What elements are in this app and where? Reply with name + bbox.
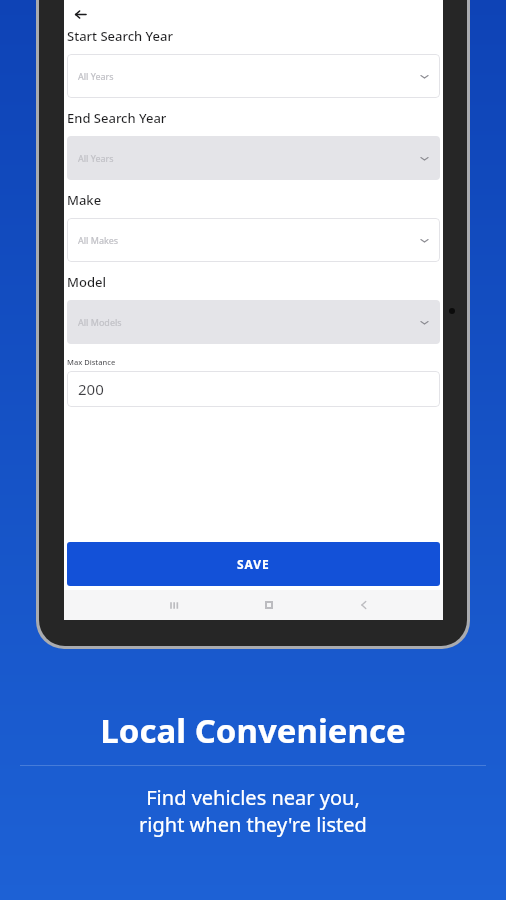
button[interactable]: Back — [69, 3, 91, 25]
staticText: Find vehicles near you, right when they'… — [139, 784, 367, 838]
button[interactable]: All Models — [67, 300, 440, 344]
staticText: End Search Year — [67, 109, 167, 127]
button[interactable]: All Makes — [67, 218, 440, 262]
button[interactable]: 200 — [67, 371, 440, 407]
staticText: All Years — [78, 152, 114, 164]
staticText: Make — [67, 191, 102, 209]
staticText: Max Distance — [67, 357, 116, 367]
button[interactable]: All Years — [67, 54, 440, 98]
staticText: All Years — [78, 70, 114, 82]
staticText: Local Convenience — [100, 708, 406, 753]
staticText: All Models — [78, 316, 122, 328]
button[interactable]: Recents — [161, 592, 187, 618]
staticText: SAVE — [237, 556, 270, 572]
button[interactable]: SAVE — [67, 542, 440, 586]
staticText: Model — [67, 273, 106, 291]
staticText: All Makes — [78, 234, 119, 246]
staticText: 200 — [78, 379, 104, 399]
staticText: Start Search Year — [67, 27, 173, 45]
button[interactable]: Back — [351, 592, 377, 618]
button[interactable]: Home — [256, 592, 282, 618]
